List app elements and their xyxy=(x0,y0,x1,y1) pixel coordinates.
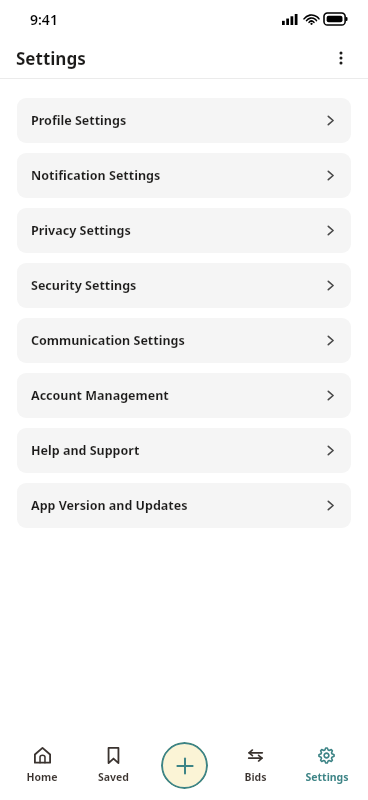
staticText: Security Settings xyxy=(31,277,324,294)
button[interactable]: Help and Support xyxy=(17,428,351,473)
staticText: Settings xyxy=(305,770,349,784)
staticText: Privacy Settings xyxy=(31,222,324,239)
button[interactable]: Notification Settings xyxy=(17,153,351,198)
staticText: Bids xyxy=(244,770,267,784)
button[interactable]: Bids xyxy=(220,730,291,800)
button[interactable]: Saved xyxy=(78,730,149,800)
staticText: Communication Settings xyxy=(31,332,324,349)
staticText: Home xyxy=(26,770,58,784)
staticText: App Version and Updates xyxy=(31,497,324,514)
button[interactable]: More options xyxy=(324,41,358,75)
staticText: Help and Support xyxy=(31,442,324,459)
staticText: 9:41 xyxy=(30,10,58,29)
staticText: Notification Settings xyxy=(31,167,324,184)
button[interactable]: Settings xyxy=(291,730,362,800)
button[interactable]: Privacy Settings xyxy=(17,208,351,253)
staticText: Account Management xyxy=(31,387,324,404)
staticText: Saved xyxy=(98,770,129,784)
button[interactable]: Home xyxy=(6,730,78,800)
button[interactable]: Communication Settings xyxy=(17,318,351,363)
staticText: Profile Settings xyxy=(31,112,324,129)
button[interactable]: Profile Settings xyxy=(17,98,351,143)
staticText: Settings xyxy=(16,47,86,70)
button[interactable]: Account Management xyxy=(17,373,351,418)
button[interactable]: App Version and Updates xyxy=(17,483,351,528)
button[interactable]: Add xyxy=(161,742,208,789)
button[interactable]: Security Settings xyxy=(17,263,351,308)
